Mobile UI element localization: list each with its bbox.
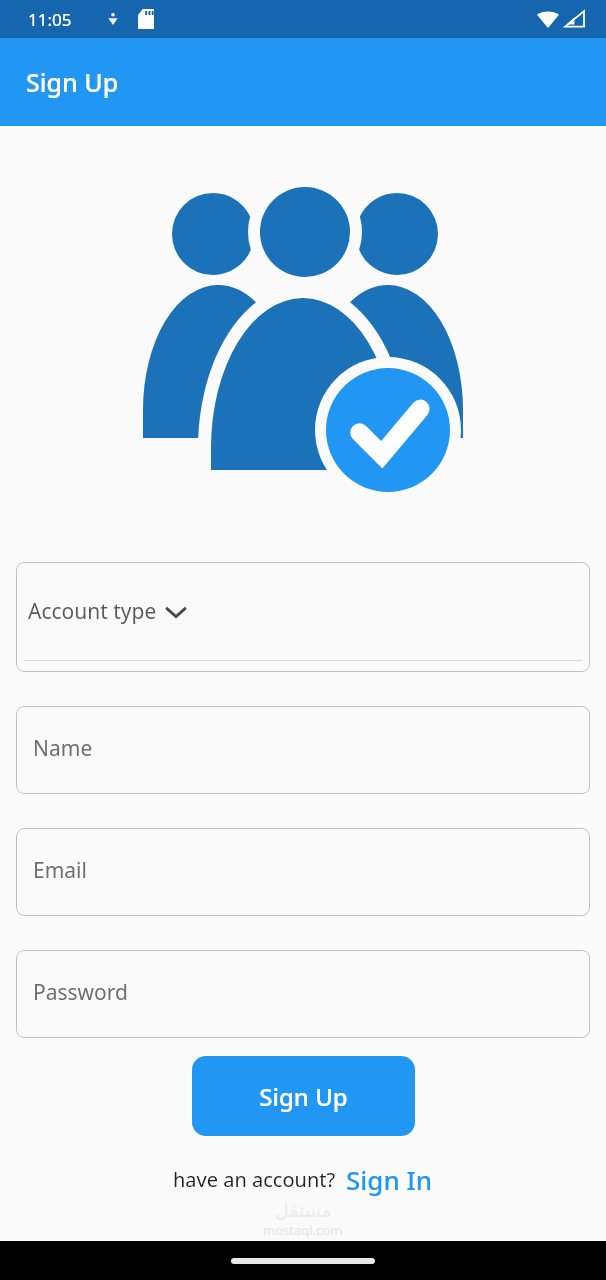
staticText: مستقل (275, 1199, 332, 1221)
staticText: Password (33, 978, 128, 1007)
button[interactable]: Sign Up (192, 1056, 415, 1136)
button[interactable]: have an account? (173, 1166, 336, 1193)
staticText: Sign Up (259, 1080, 348, 1113)
staticText: 11:05 (28, 8, 72, 31)
button[interactable]: Sign In (346, 1162, 433, 1197)
staticText: mostaql.com (263, 1221, 343, 1239)
staticText: Sign In (346, 1162, 433, 1197)
button[interactable]: Password (16, 950, 590, 1038)
staticText: Name (33, 734, 93, 763)
button[interactable]: Account type (16, 562, 590, 672)
staticText: Email (33, 856, 87, 885)
button[interactable]: Email (16, 828, 590, 916)
staticText: Account type (28, 597, 157, 626)
staticText: Sign Up (26, 65, 119, 99)
button[interactable]: Name (16, 706, 590, 794)
